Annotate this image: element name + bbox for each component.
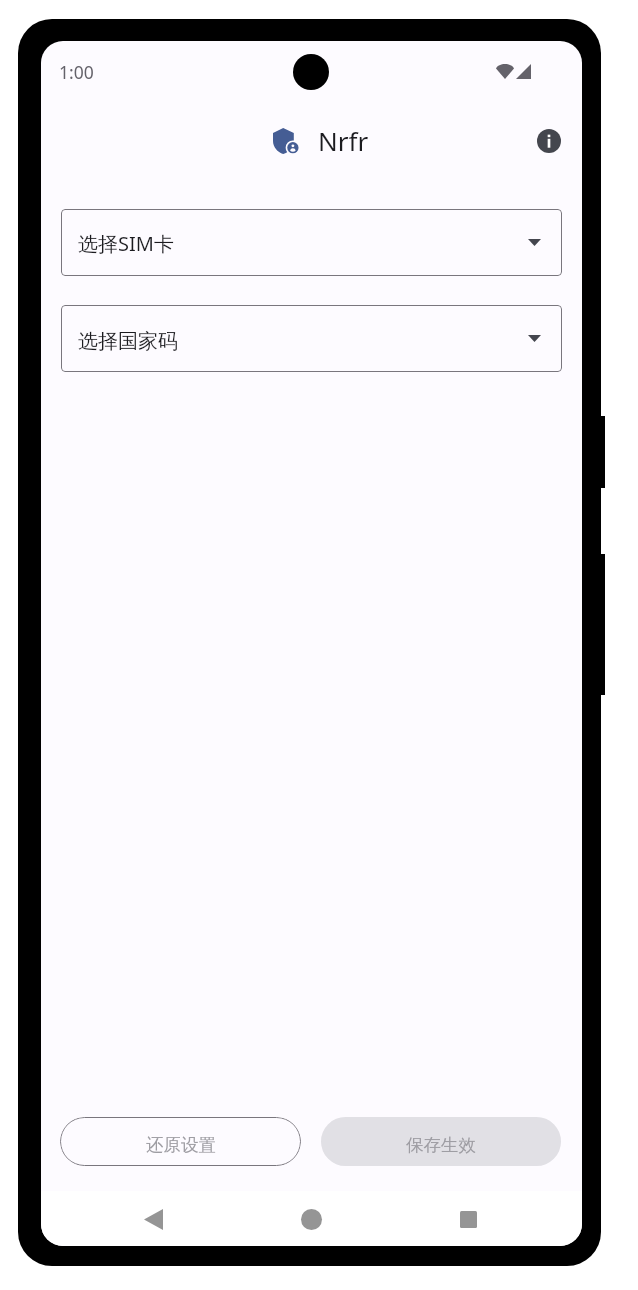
button[interactable]: Home — [291, 1199, 331, 1239]
button[interactable]: Info — [525, 117, 573, 165]
staticText: 选择SIM卡 — [78, 230, 174, 257]
button[interactable]: 选择SIM卡 — [61, 209, 562, 276]
button[interactable]: 选择国家码 — [61, 305, 562, 372]
button[interactable]: Back — [133, 1199, 173, 1239]
staticText: 选择国家码 — [78, 329, 178, 354]
button[interactable]: Recents — [448, 1199, 488, 1239]
staticText: Nrfr — [318, 123, 369, 158]
button[interactable]: 还原设置 — [60, 1117, 301, 1166]
staticText: 1:00 — [59, 60, 94, 84]
staticText: 还原设置 — [146, 1134, 216, 1156]
staticText: 保存生效 — [406, 1134, 476, 1156]
button[interactable]: 保存生效 — [321, 1117, 561, 1166]
